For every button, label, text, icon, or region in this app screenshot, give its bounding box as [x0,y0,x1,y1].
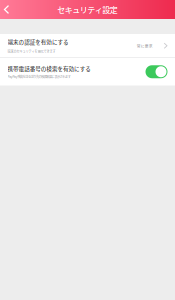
staticText: 端末のセキュリティを強化できます [7,49,55,53]
button[interactable]: 端末の認証を有効にする [0,34,175,57]
button[interactable]: 携帯電話番号の検索を有効にする [145,65,167,78]
button[interactable]: 戻る [0,0,13,19]
staticText: 端末の認証を有効にする [7,38,69,46]
staticText: PayPay残高を送る送り先の検索結果に表示されます [7,74,71,79]
staticText: 常に要求 [137,43,153,48]
staticText: 携帯電話番号の検索を有効にする [7,65,91,73]
staticText: セキュリティ設定 [57,4,118,15]
